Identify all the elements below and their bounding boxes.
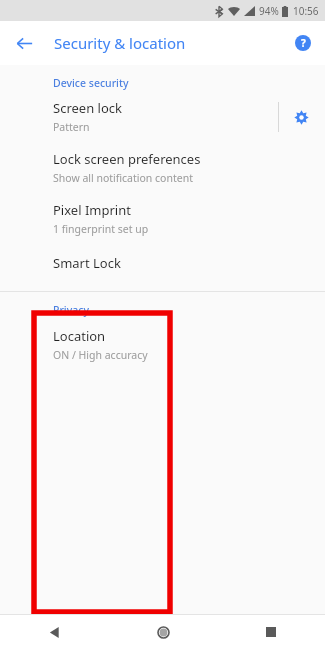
staticText: Device security	[53, 76, 129, 90]
button[interactable]: Location	[0, 317, 325, 614]
staticText: Lock screen preferences	[53, 150, 201, 168]
staticText: Show all notification content	[53, 171, 193, 185]
staticText: Smart Lock	[53, 254, 121, 272]
staticText: Pixel Imprint	[53, 201, 131, 219]
staticText: Location	[53, 327, 106, 345]
button[interactable]: Lock screen preferences	[0, 150, 325, 185]
staticText: Pattern	[53, 120, 90, 134]
button[interactable]: Back	[9, 28, 39, 58]
staticText: ?	[301, 36, 306, 50]
button[interactable]: Pixel Imprint	[0, 201, 325, 236]
staticText: 10:56	[293, 4, 319, 18]
button[interactable]: Recent apps	[217, 614, 325, 650]
button[interactable]: Home	[109, 614, 217, 650]
staticText: Privacy	[53, 303, 89, 317]
button[interactable]: Smart Lock	[0, 254, 325, 272]
staticText: 94%	[259, 4, 279, 18]
button[interactable]: Screen lock settings	[288, 104, 314, 130]
staticText: ON / High accuracy	[53, 348, 148, 362]
staticText: Screen lock	[53, 99, 122, 117]
staticText: 1 fingerprint set up	[53, 222, 149, 236]
button[interactable]: Back	[0, 614, 109, 650]
staticText: Security & location	[54, 33, 186, 53]
button[interactable]: Screen lock	[0, 99, 325, 134]
button[interactable]: Help	[289, 29, 317, 57]
